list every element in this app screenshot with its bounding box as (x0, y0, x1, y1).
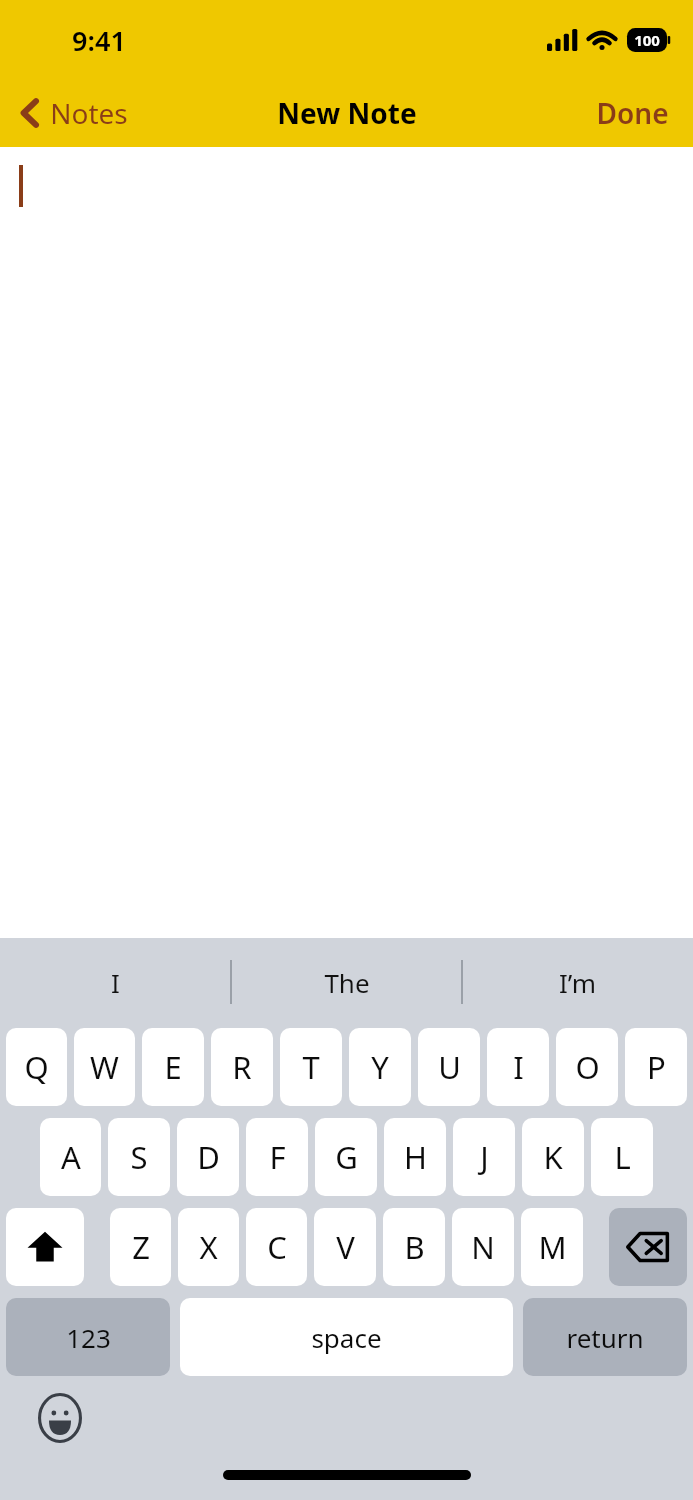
staticText: New Note (277, 94, 417, 132)
staticText: K (543, 1136, 563, 1178)
staticText: D (197, 1136, 220, 1178)
button[interactable]: N (452, 1208, 514, 1286)
button[interactable]: R (211, 1028, 273, 1106)
staticText: Done (596, 94, 669, 132)
staticText: Q (24, 1046, 49, 1088)
button[interactable]: C (246, 1208, 307, 1286)
button[interactable]: S (108, 1118, 170, 1196)
button[interactable]: I (487, 1028, 549, 1106)
staticText: P (647, 1046, 666, 1088)
button[interactable]: Delete (609, 1208, 687, 1286)
staticText: 123 (66, 1320, 111, 1355)
staticText: space (311, 1320, 382, 1355)
button[interactable]: W (74, 1028, 135, 1106)
staticText: R (232, 1046, 252, 1088)
staticText: W (90, 1046, 119, 1088)
button[interactable]: E (142, 1028, 204, 1106)
button[interactable]: T (280, 1028, 342, 1106)
button[interactable]: The (231, 938, 462, 1026)
staticText: Notes (50, 94, 128, 132)
button[interactable]: Notes (12, 86, 136, 140)
staticText: J (480, 1136, 489, 1178)
staticText: return (566, 1320, 644, 1355)
staticText: Y (371, 1046, 389, 1088)
staticText: 100 (634, 30, 660, 50)
button[interactable]: Emoji (32, 1390, 88, 1446)
staticText: B (404, 1226, 425, 1268)
staticText: G (335, 1136, 358, 1178)
button[interactable]: F (246, 1118, 308, 1196)
button[interactable]: I’m (462, 938, 693, 1026)
staticText: H (404, 1136, 427, 1178)
staticText: Z (132, 1226, 150, 1268)
staticText: I (513, 1046, 524, 1088)
staticText: C (267, 1226, 287, 1268)
staticText: 9:41 (72, 22, 126, 59)
staticText: I (111, 965, 120, 1000)
button[interactable]: O (556, 1028, 618, 1106)
button[interactable]: L (591, 1118, 653, 1196)
button[interactable]: B (383, 1208, 445, 1286)
button[interactable]: P (625, 1028, 687, 1106)
button[interactable] (0, 147, 693, 938)
button[interactable]: J (453, 1118, 515, 1196)
button[interactable]: H (384, 1118, 446, 1196)
button[interactable]: D (177, 1118, 239, 1196)
button[interactable]: U (418, 1028, 480, 1106)
button[interactable]: Q (6, 1028, 67, 1106)
staticText: A (61, 1136, 81, 1178)
button[interactable]: A (40, 1118, 101, 1196)
staticText: N (471, 1226, 495, 1268)
staticText: X (199, 1226, 218, 1268)
staticText: O (575, 1046, 600, 1088)
button[interactable]: Done (586, 86, 679, 140)
staticText: T (302, 1046, 320, 1088)
staticText: I’m (559, 965, 596, 1000)
button[interactable]: V (314, 1208, 376, 1286)
button[interactable]: Z (110, 1208, 171, 1286)
button[interactable]: I (0, 938, 231, 1026)
staticText: S (130, 1136, 148, 1178)
button[interactable]: Shift (6, 1208, 84, 1286)
staticText: M (538, 1226, 567, 1268)
button[interactable]: return (523, 1298, 687, 1376)
staticText: The (324, 965, 370, 1000)
staticText: L (614, 1136, 631, 1178)
button[interactable]: M (521, 1208, 583, 1286)
button[interactable]: K (522, 1118, 584, 1196)
staticText: E (164, 1046, 182, 1088)
button[interactable]: Y (349, 1028, 411, 1106)
button[interactable]: space (180, 1298, 513, 1376)
button[interactable]: 123 (6, 1298, 170, 1376)
staticText: V (336, 1226, 355, 1268)
staticText: U (438, 1046, 461, 1088)
staticText: F (269, 1136, 286, 1178)
button[interactable]: X (178, 1208, 239, 1286)
button[interactable]: G (315, 1118, 377, 1196)
